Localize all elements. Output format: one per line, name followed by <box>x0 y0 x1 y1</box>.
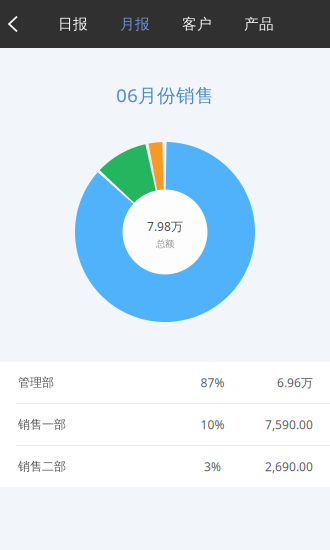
staticText: 月报 <box>120 15 150 33</box>
staticText: 7,590.00 <box>265 416 313 432</box>
button[interactable]: 日报 <box>49 0 97 48</box>
staticText: 总额 <box>156 238 174 250</box>
staticText: 2,690.00 <box>265 458 313 474</box>
staticText: 3% <box>204 458 221 474</box>
button[interactable]: 月报 <box>111 0 159 48</box>
staticText: 7.98万 <box>147 218 183 234</box>
staticText: 日报 <box>58 15 88 33</box>
button[interactable]: 销售二部 <box>0 446 330 487</box>
staticText: 6.96万 <box>277 374 313 390</box>
staticText: 06月份销售 <box>116 83 214 107</box>
staticText: 87% <box>200 374 224 390</box>
staticText: 销售一部 <box>18 417 66 432</box>
staticText: 产品 <box>244 15 274 33</box>
button[interactable]: 管理部 <box>0 362 330 403</box>
button[interactable]: 产品 <box>235 0 283 48</box>
staticText: 客户 <box>182 15 212 33</box>
button[interactable]: Back <box>0 0 28 48</box>
staticText: 销售二部 <box>18 459 66 474</box>
staticText: 10% <box>200 416 224 432</box>
button[interactable]: 销售一部 <box>0 404 330 445</box>
button[interactable]: 客户 <box>173 0 221 48</box>
staticText: 管理部 <box>18 375 54 390</box>
